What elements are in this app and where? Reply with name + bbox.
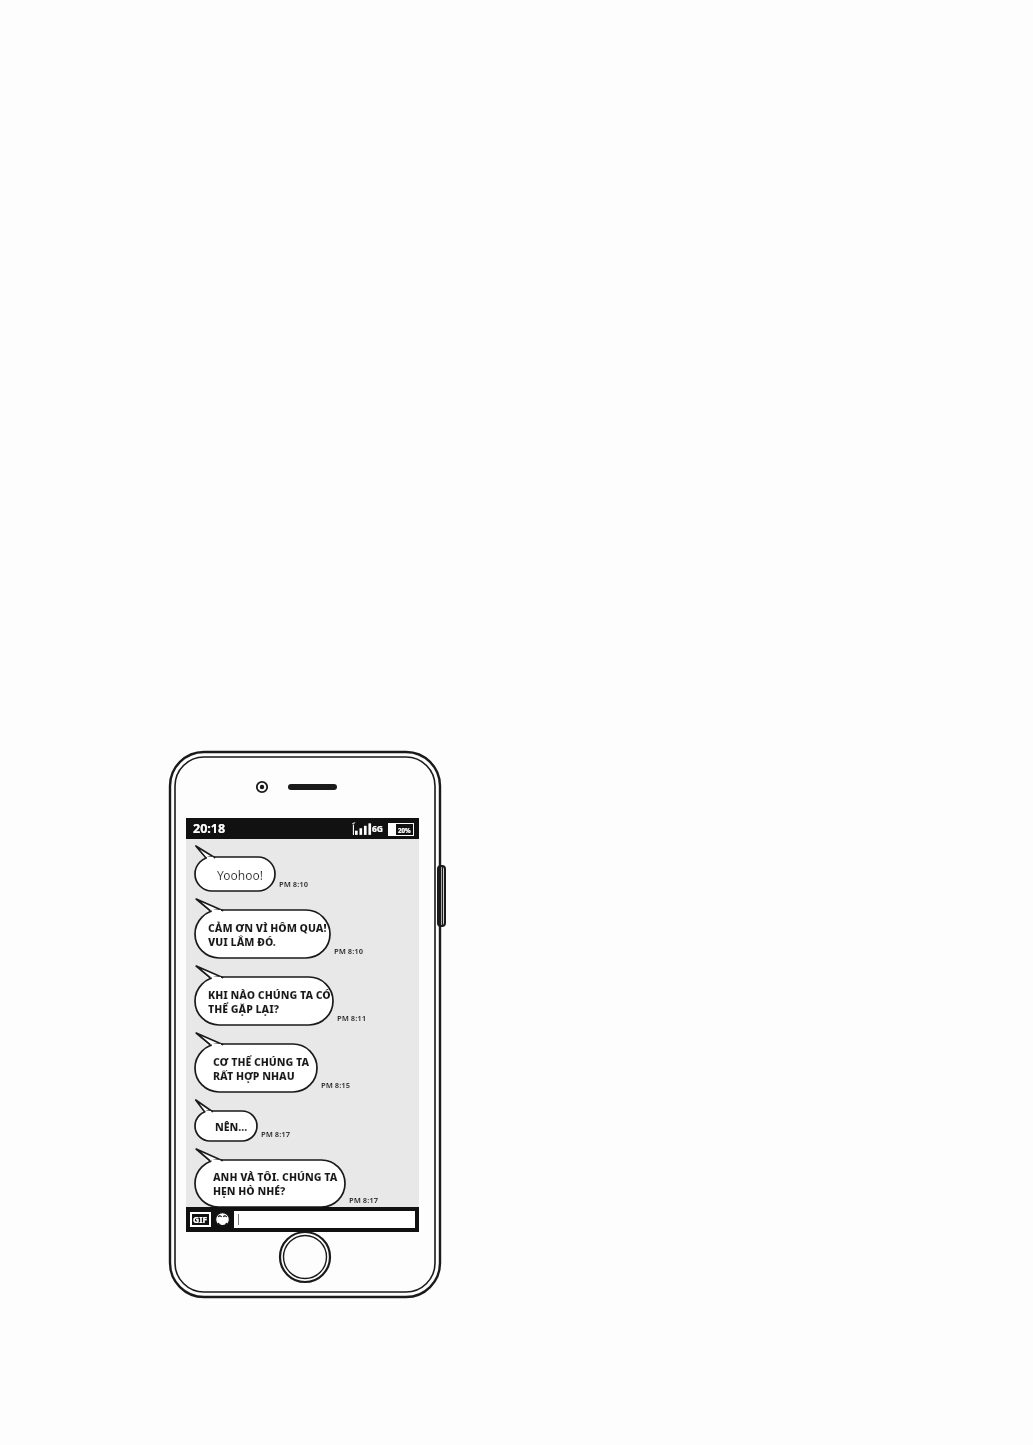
button[interactable]: KHI NÀO CHÚNG TA CÓ: [195, 966, 333, 1025]
staticText: PM 8:17: [349, 1195, 379, 1205]
staticText: 20%: [398, 826, 411, 834]
staticText: RẤT HỢP NHAU: [213, 1069, 295, 1083]
button[interactable]: ANH VÀ TÔI. CHÚNG TA: [195, 1149, 345, 1207]
staticText: HẸN HÒ NHÉ?: [213, 1184, 286, 1198]
staticText: GIF: [193, 1214, 208, 1225]
staticText: VUI LẮM ĐÓ.: [208, 935, 276, 949]
staticText: NÊN...: [215, 1120, 248, 1134]
staticText: 20:18: [193, 820, 226, 837]
staticText: CẢM ƠN VÌ HÔM QUA!: [208, 921, 327, 935]
button[interactable]: Send GIF: [192, 1214, 209, 1225]
staticText: 6G: [372, 823, 384, 835]
staticText: PM 8:11: [337, 1013, 367, 1023]
button[interactable]: Yoohoo!: [195, 846, 275, 891]
button[interactable]: [234, 1211, 415, 1228]
staticText: PM 8:10: [279, 879, 309, 889]
button[interactable]: CƠ THỂ CHÚNG TA: [195, 1033, 317, 1092]
staticText: PM 8:15: [321, 1080, 351, 1090]
button[interactable]: Emoji: [215, 1212, 230, 1227]
staticText: KHI NÀO CHÚNG TA CÓ: [208, 988, 331, 1002]
staticText: THỂ GẶP LẠI?: [208, 1002, 280, 1016]
button[interactable]: NÊN...: [195, 1100, 257, 1141]
staticText: PM 8:10: [334, 946, 364, 956]
staticText: PM 8:17: [261, 1129, 291, 1139]
staticText: Yoohoo!: [217, 867, 263, 883]
staticText: CƠ THỂ CHÚNG TA: [213, 1055, 310, 1069]
button[interactable]: CẢM ƠN VÌ HÔM QUA!: [195, 899, 330, 958]
staticText: ANH VÀ TÔI. CHÚNG TA: [213, 1170, 338, 1184]
